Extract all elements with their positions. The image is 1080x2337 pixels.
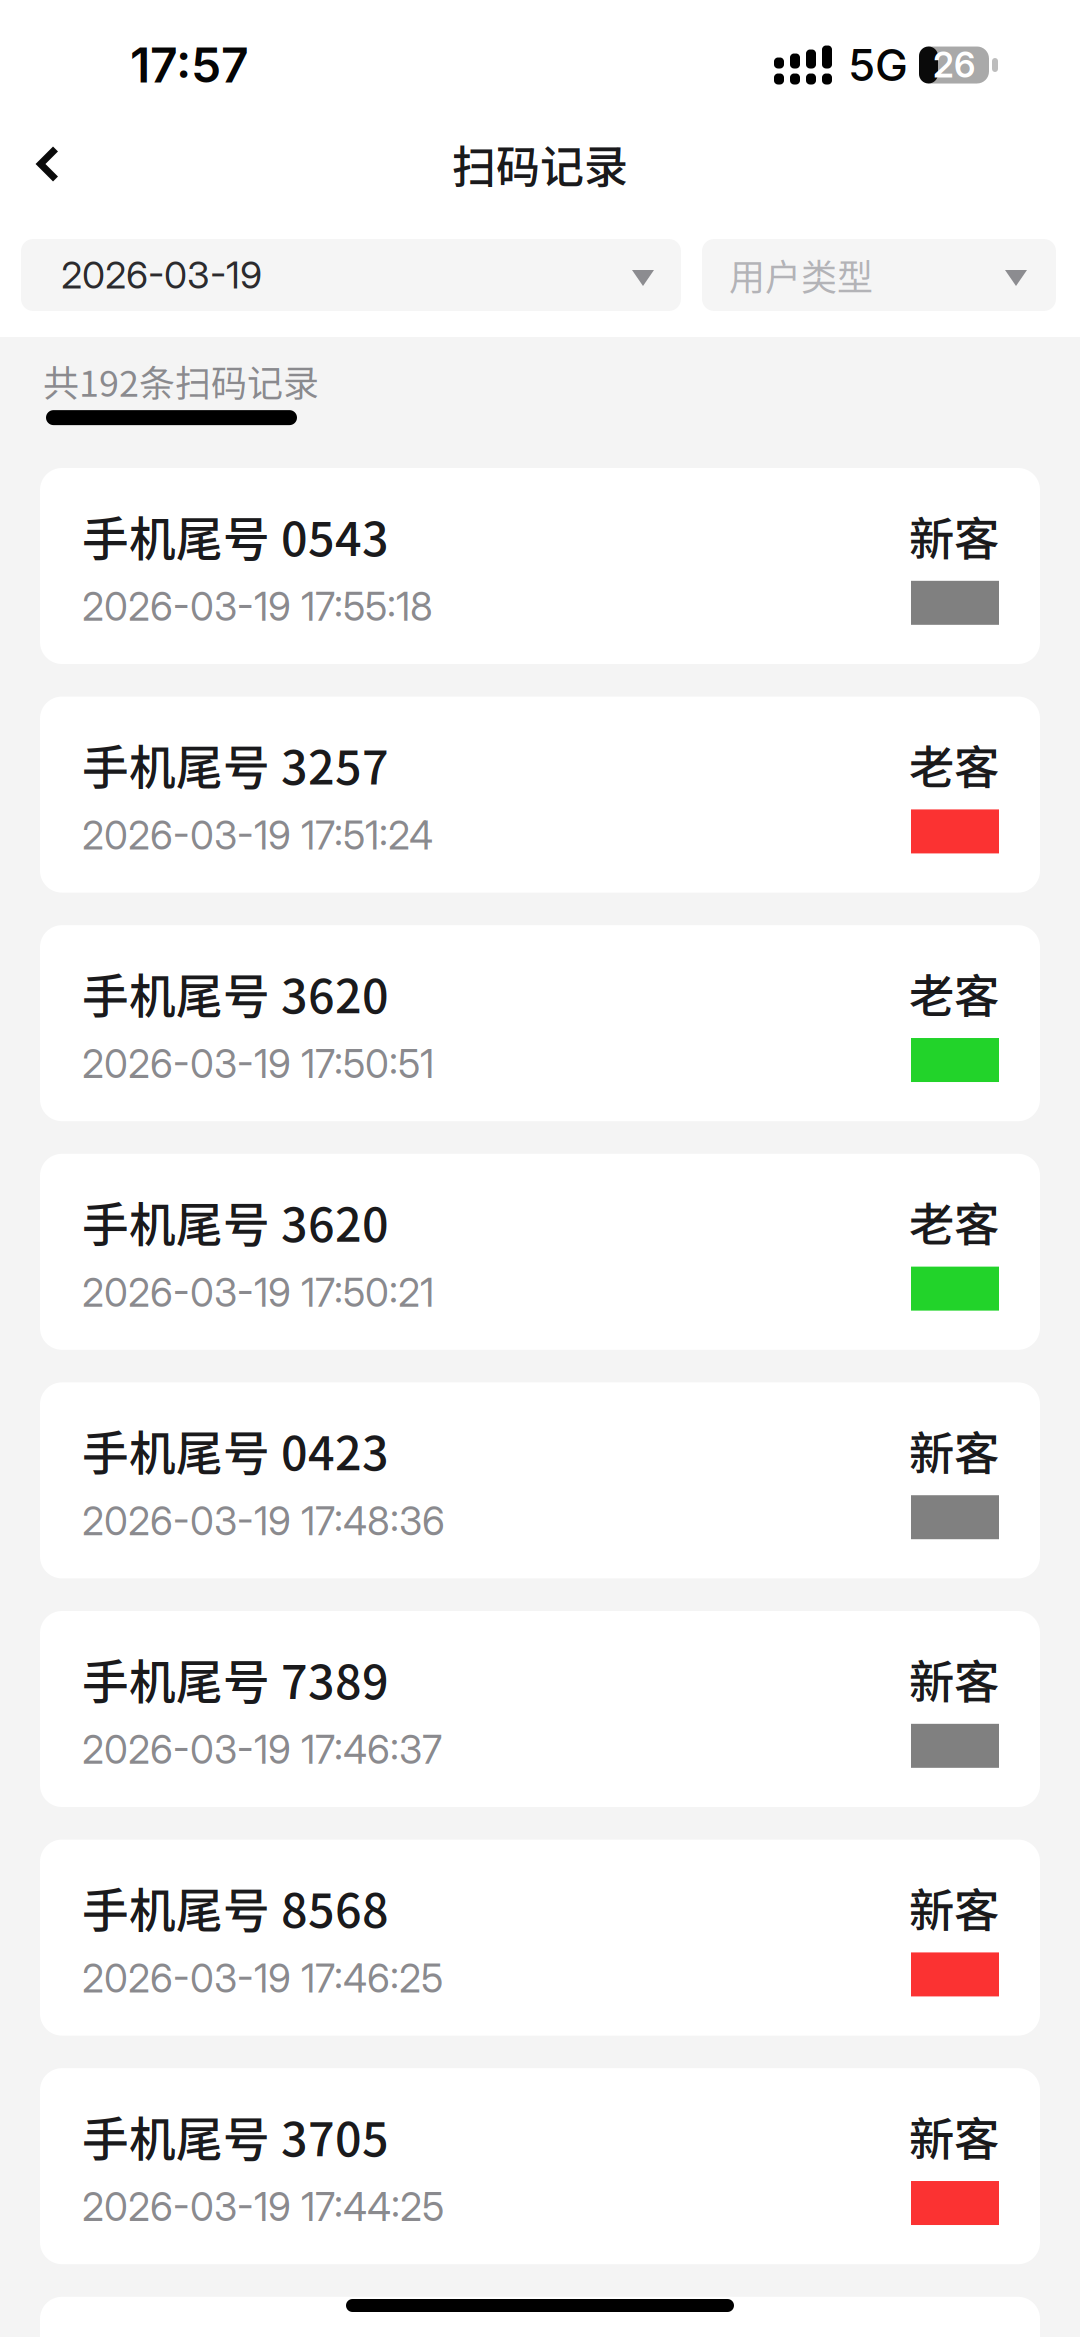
staticText: 新客: [909, 1646, 999, 1712]
button[interactable]: 手机尾号 0423: [40, 1382, 1040, 1578]
staticText: 5G: [848, 38, 908, 92]
button[interactable]: Back: [0, 116, 96, 212]
staticText: 2026-03-19: [61, 252, 262, 298]
staticText: 2026-03-19 17:48:36: [82, 1498, 445, 1545]
staticText: 新客: [909, 1418, 999, 1483]
staticText: 26: [933, 44, 975, 86]
button[interactable]: 手机尾号 3705: [40, 2068, 1040, 2264]
staticText: 手机尾号 0423: [82, 1416, 389, 1484]
staticText: 2026-03-19 17:50:51: [82, 1041, 434, 1087]
staticText: 2026-03-19 17:46:37: [82, 1726, 442, 1773]
button[interactable]: 手机尾号 7389: [40, 1611, 1040, 1807]
button[interactable]: 2026-03-19: [21, 239, 681, 311]
staticText: 2026-03-19 17:44:25: [82, 2184, 444, 2230]
staticText: 手机尾号 3620: [82, 1188, 389, 1255]
staticText: 老客: [909, 732, 999, 797]
staticText: 2026-03-19 17:46:25: [82, 1955, 443, 2002]
button[interactable]: 手机尾号 8568: [40, 1840, 1040, 2036]
staticText: 老客: [909, 960, 999, 1026]
staticText: 用户类型: [729, 249, 873, 301]
staticText: 新客: [909, 1875, 999, 1940]
button[interactable]: 手机尾号 3620: [40, 1154, 1040, 1350]
staticText: 扫码记录: [452, 132, 628, 196]
staticText: 手机尾号 3705: [82, 2102, 389, 2170]
button[interactable]: 手机尾号 0543: [40, 468, 1040, 664]
staticText: 新客: [909, 503, 999, 569]
staticText: 老客: [909, 1189, 999, 1255]
staticText: 2026-03-19 17:51:24: [82, 812, 433, 859]
button[interactable]: 手机尾号 3620: [40, 925, 1040, 1121]
staticText: 共192条扫码记录: [43, 355, 319, 407]
staticText: 17:57: [130, 36, 249, 94]
staticText: 手机尾号 3620: [82, 959, 389, 1027]
staticText: 手机尾号 3257: [82, 730, 389, 798]
staticText: 2026-03-19 17:50:21: [82, 1269, 434, 1316]
button[interactable]: 用户类型: [702, 239, 1056, 311]
staticText: 手机尾号 0543: [82, 502, 389, 569]
staticText: 手机尾号 7389: [82, 1645, 389, 1712]
staticText: 2026-03-19 17:55:18: [82, 583, 433, 630]
staticText: 新客: [909, 2103, 999, 2169]
button[interactable]: 手机尾号 3257: [40, 697, 1040, 893]
staticText: 手机尾号 8568: [82, 1873, 389, 1941]
